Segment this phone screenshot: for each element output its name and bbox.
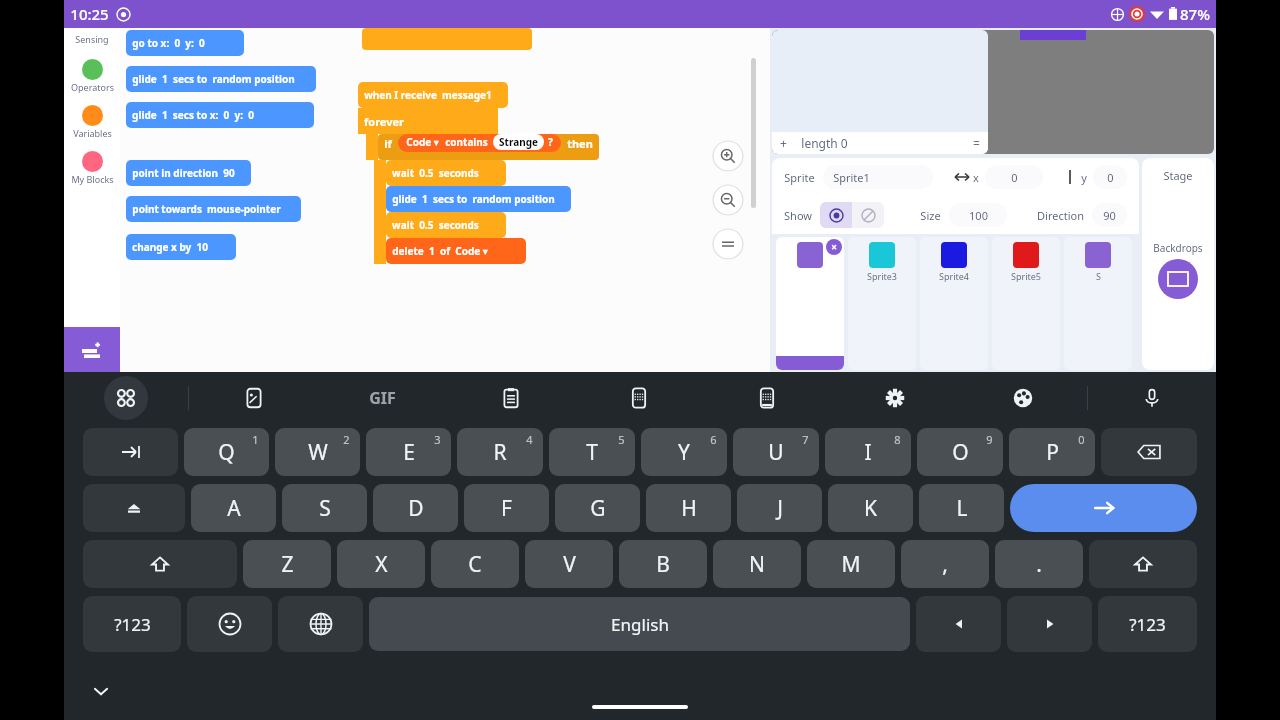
button[interactable]: J <box>737 484 822 532</box>
button[interactable]: Z <box>243 540 331 588</box>
staticText: 10:25 <box>70 4 109 24</box>
button[interactable]: Shift <box>1089 540 1197 588</box>
button[interactable]: Zoom out <box>712 184 744 216</box>
button[interactable]: Add extension <box>64 327 120 372</box>
button[interactable]: Sprite1 <box>776 237 844 370</box>
staticText: ?123 <box>1129 613 1166 636</box>
button[interactable]: Hide keyboard <box>84 674 118 708</box>
button[interactable]: when I receive message1 <box>358 82 508 108</box>
staticText: K <box>864 494 877 523</box>
staticText: if <box>384 136 392 151</box>
button[interactable]: V <box>525 540 613 588</box>
button[interactable]: glide 1 secs to x: 0 y: 0 <box>126 102 314 128</box>
button[interactable]: Reset zoom <box>712 228 744 260</box>
button[interactable]: wait 0.5 seconds <box>386 160 506 186</box>
button[interactable]: My Blocks <box>71 151 114 195</box>
button[interactable]: Sprite5 <box>992 237 1060 370</box>
button[interactable]: Caps lock <box>83 484 185 532</box>
button[interactable]: M <box>807 540 895 588</box>
button[interactable]: English <box>369 597 910 651</box>
button[interactable]: GIF <box>318 372 447 424</box>
staticText: Backdrops <box>1153 241 1203 255</box>
button[interactable]: Show sprite <box>820 202 852 228</box>
staticText: x <box>973 170 979 185</box>
button[interactable]: S <box>1064 237 1132 370</box>
staticText: point in direction 90 <box>132 166 235 180</box>
button[interactable]: T <box>549 428 635 476</box>
button[interactable]: 0 <box>1093 165 1127 189</box>
staticText: ?123 <box>114 613 151 636</box>
button[interactable]: Sprite1 <box>823 165 933 189</box>
button[interactable]: N <box>713 540 801 588</box>
button[interactable]: B <box>619 540 707 588</box>
button[interactable]: Emoji <box>187 596 272 652</box>
button[interactable]: Variables <box>73 105 112 149</box>
button[interactable]: Apps <box>104 376 148 420</box>
staticText: Direction <box>1037 208 1084 223</box>
button[interactable]: Shift <box>83 540 237 588</box>
button[interactable]: ?123 <box>83 596 181 652</box>
button[interactable]: Tab <box>83 428 178 476</box>
button[interactable]: point towards mouse-pointer <box>126 196 301 222</box>
staticText: S <box>1096 270 1101 282</box>
button[interactable]: Q <box>184 428 269 476</box>
staticText: E <box>403 438 415 467</box>
button[interactable]: L <box>919 484 1004 532</box>
button[interactable]: Operators <box>71 59 114 103</box>
staticText: , <box>942 550 948 579</box>
button[interactable]: Zoom in <box>712 140 744 172</box>
button[interactable]: go to x: 0 y: 0 <box>126 30 244 56</box>
staticText: 87% <box>1180 4 1210 24</box>
button[interactable]: Move cursor right <box>1007 596 1092 652</box>
button[interactable]: Voice input <box>1088 372 1216 424</box>
button[interactable]: Backspace <box>1101 428 1197 476</box>
button[interactable]: F <box>464 484 549 532</box>
button[interactable]: wait 0.5 seconds <box>386 212 506 238</box>
button[interactable]: ?123 <box>1098 596 1197 652</box>
button[interactable]: H <box>646 484 731 532</box>
button[interactable]: K <box>828 484 913 532</box>
button[interactable]: glide 1 secs to random position <box>386 186 571 212</box>
button[interactable]: Change language <box>278 596 363 652</box>
button[interactable]: R <box>457 428 543 476</box>
button[interactable]: G <box>555 484 640 532</box>
button[interactable]: One-handed mode <box>575 372 703 424</box>
staticText: J <box>777 494 783 523</box>
button[interactable]: I <box>825 428 911 476</box>
button[interactable]: 90 <box>1092 203 1127 227</box>
button[interactable]: Move cursor left <box>916 596 1001 652</box>
button[interactable]: glide 1 secs to random position <box>126 66 316 92</box>
button[interactable]: Enter <box>1010 484 1197 532</box>
button[interactable]: C <box>431 540 519 588</box>
button[interactable]: Y <box>641 428 727 476</box>
button[interactable]: Sprite4 <box>920 237 988 370</box>
button[interactable]: . <box>995 540 1083 588</box>
button[interactable]: change x by 10 <box>126 234 236 260</box>
button[interactable]: W <box>275 428 360 476</box>
button[interactable]: delete 1 of Code ▾ <box>386 238 526 264</box>
staticText: Operators <box>71 81 114 93</box>
button[interactable]: 0 <box>985 165 1043 189</box>
button[interactable]: S <box>282 484 367 532</box>
button[interactable]: D <box>373 484 458 532</box>
button[interactable]: Choose a backdrop <box>1158 259 1198 299</box>
button[interactable]: Clipboard <box>447 372 575 424</box>
button[interactable]: X <box>337 540 425 588</box>
button[interactable]: A <box>191 484 276 532</box>
staticText: glide 1 secs to random position <box>132 72 295 86</box>
button[interactable]: Resize keyboard <box>703 372 831 424</box>
button[interactable]: Sensing <box>75 33 109 57</box>
button[interactable]: 100 <box>949 203 1007 227</box>
button[interactable]: Theme <box>959 372 1087 424</box>
button[interactable]: Stickers <box>189 372 318 424</box>
button[interactable]: Settings <box>831 372 959 424</box>
staticText: 7 <box>802 432 809 447</box>
button[interactable]: Hide sprite <box>852 202 884 228</box>
button[interactable]: U <box>733 428 819 476</box>
button[interactable]: , <box>901 540 989 588</box>
button[interactable]: O <box>917 428 1003 476</box>
button[interactable]: Sprite3 <box>848 237 916 370</box>
button[interactable]: point in direction 90 <box>126 160 251 186</box>
button[interactable]: P <box>1009 428 1095 476</box>
button[interactable]: E <box>366 428 451 476</box>
